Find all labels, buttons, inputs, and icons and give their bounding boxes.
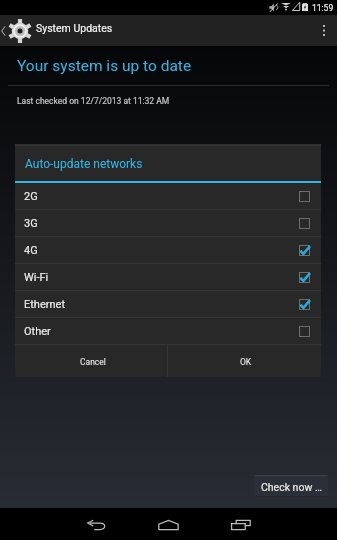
staticText: Wi-Fi	[24, 271, 49, 284]
staticText: Cancel	[80, 357, 106, 367]
button[interactable]: Recent apps	[217, 508, 265, 540]
button[interactable]: Home	[144, 508, 192, 540]
button[interactable]: 4G	[15, 237, 321, 263]
button[interactable]: OK	[168, 345, 321, 377]
button[interactable]: Navigate up	[0, 15, 36, 46]
button[interactable]: More options	[311, 15, 337, 46]
staticText: 2G	[24, 190, 38, 203]
button[interactable]: Back	[72, 508, 120, 540]
staticText: System Updates	[36, 22, 113, 46]
staticText: Auto-update networks	[25, 157, 143, 171]
staticText: 3G	[24, 217, 38, 230]
button[interactable]: 3G	[15, 210, 321, 236]
button[interactable]: Check now …	[254, 475, 328, 497]
staticText: Last checked on 12/7/2013 at 11:32 AM	[17, 96, 170, 106]
button[interactable]: Other	[15, 318, 321, 344]
staticText: 4G	[24, 244, 38, 257]
staticText: Other	[24, 325, 51, 338]
button[interactable]: Cancel	[15, 345, 167, 377]
staticText: Ethernet	[24, 298, 65, 311]
staticText: Your system is up to date	[17, 57, 192, 75]
button[interactable]: 2G	[15, 183, 321, 209]
staticText: 11:59	[312, 3, 334, 13]
staticText: Check now …	[261, 481, 322, 493]
button[interactable]: Wi-Fi	[15, 264, 321, 290]
staticText: OK	[240, 357, 252, 367]
button[interactable]: Ethernet	[15, 291, 321, 317]
